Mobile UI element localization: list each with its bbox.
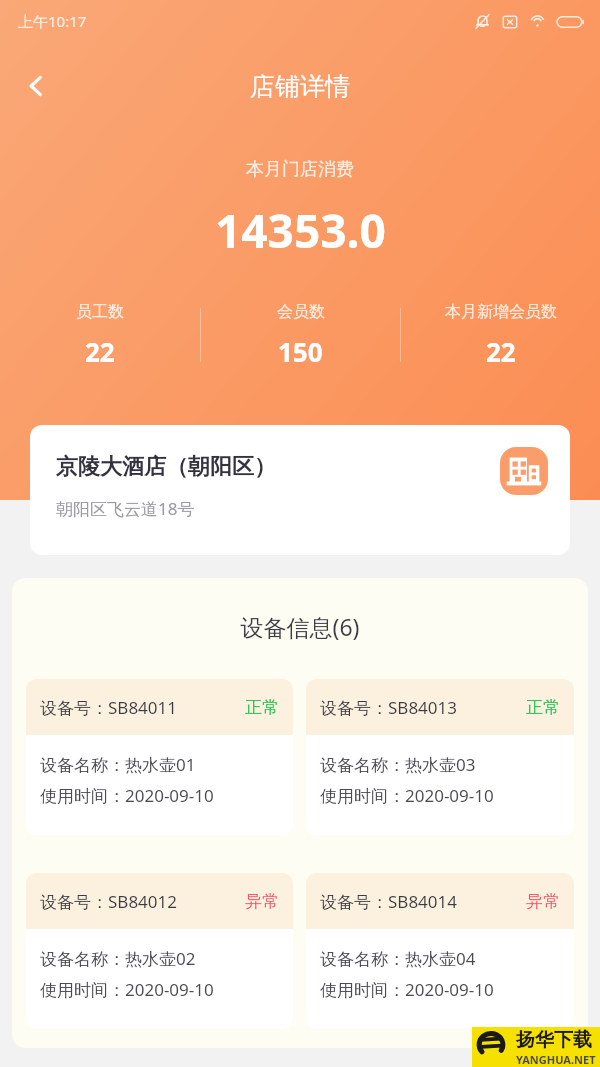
staticText: 异常 <box>526 891 560 912</box>
button[interactable]: 京陵大酒店（朝阳区） <box>30 425 570 555</box>
button[interactable]: 设备号：SB84012 <box>26 873 293 1029</box>
button[interactable]: 设备号：SB84013 <box>306 679 574 835</box>
staticText: 本月新增会员数 <box>445 302 557 322</box>
staticText: 店铺详情 <box>250 71 350 102</box>
staticText: 京陵大酒店（朝阳区） <box>56 453 276 481</box>
button[interactable]: 员工数 <box>0 302 200 369</box>
other: Store <box>500 447 548 495</box>
staticText: 本月门店消费 <box>246 158 354 181</box>
staticText: 会员数 <box>277 302 325 322</box>
staticText: 使用时间：2020-09-10 <box>40 978 214 1001</box>
staticText: 22 <box>85 334 115 369</box>
staticText: 使用时间：2020-09-10 <box>320 784 494 807</box>
staticText: 使用时间：2020-09-10 <box>320 978 494 1001</box>
staticText: 异常 <box>245 891 279 912</box>
button[interactable]: 会员数 <box>201 302 400 369</box>
staticText: 14353.0 <box>215 199 386 262</box>
staticText: 朝阳区飞云道18号 <box>56 497 195 520</box>
button[interactable]: 本月新增会员数 <box>401 302 600 369</box>
button[interactable]: 设备号：SB84014 <box>306 873 574 1029</box>
staticText: 设备号：SB84011 <box>40 696 178 719</box>
staticText: 上午10:17 <box>18 11 87 31</box>
staticText: 设备号：SB84014 <box>320 890 458 913</box>
staticText: 设备名称：热水壶01 <box>40 753 196 776</box>
staticText: 设备信息(6) <box>12 611 588 642</box>
staticText: 22 <box>486 334 516 369</box>
staticText: 使用时间：2020-09-10 <box>40 784 214 807</box>
staticText: 设备号：SB84012 <box>40 890 178 913</box>
staticText: 设备名称：热水壶02 <box>40 947 196 970</box>
staticText: 扬华下载 <box>516 1028 592 1052</box>
staticText: 员工数 <box>76 302 124 322</box>
button[interactable]: 设备号：SB84011 <box>26 679 293 835</box>
staticText: 正常 <box>526 697 560 718</box>
staticText: 设备名称：热水壶03 <box>320 753 476 776</box>
staticText: 150 <box>278 334 323 369</box>
staticText: 设备号：SB84013 <box>320 696 458 719</box>
staticText: YANGHUA.NET <box>516 1052 596 1067</box>
button[interactable]: Back <box>8 58 64 114</box>
staticText: 正常 <box>245 697 279 718</box>
staticText: 设备名称：热水壶04 <box>320 947 476 970</box>
